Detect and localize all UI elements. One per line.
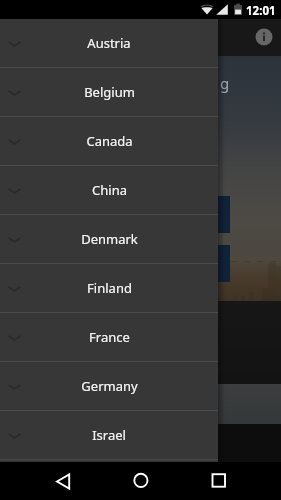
staticText: Israel: [92, 426, 126, 444]
staticText: France: [89, 328, 130, 346]
button[interactable]: France: [0, 313, 218, 362]
button[interactable]: Finland: [0, 264, 218, 313]
button[interactable]: Info: [246, 19, 281, 54]
button[interactable]: Belgium: [0, 68, 218, 117]
button[interactable]: Back: [42, 462, 84, 500]
button[interactable]: Denmark: [0, 215, 218, 264]
staticText: Belgium: [84, 83, 135, 101]
button[interactable]: [96, 245, 230, 282]
staticText: China: [92, 181, 127, 199]
button[interactable]: Home: [120, 462, 162, 500]
button[interactable]: Germany: [0, 362, 218, 411]
button[interactable]: Austria: [0, 19, 218, 68]
staticText: Finland: [87, 279, 132, 297]
button[interactable]: Canada: [0, 117, 218, 166]
button[interactable]: Recents: [198, 462, 240, 500]
staticText: Denmark: [81, 230, 138, 248]
staticText: Austria: [87, 34, 131, 52]
button[interactable]: China: [0, 166, 218, 215]
button[interactable]: Israel: [0, 411, 218, 460]
button[interactable]: [96, 196, 230, 233]
staticText: Canada: [86, 132, 133, 150]
staticText: g: [220, 73, 230, 93]
staticText: Germany: [81, 377, 138, 395]
staticText: 12:01: [246, 3, 276, 19]
